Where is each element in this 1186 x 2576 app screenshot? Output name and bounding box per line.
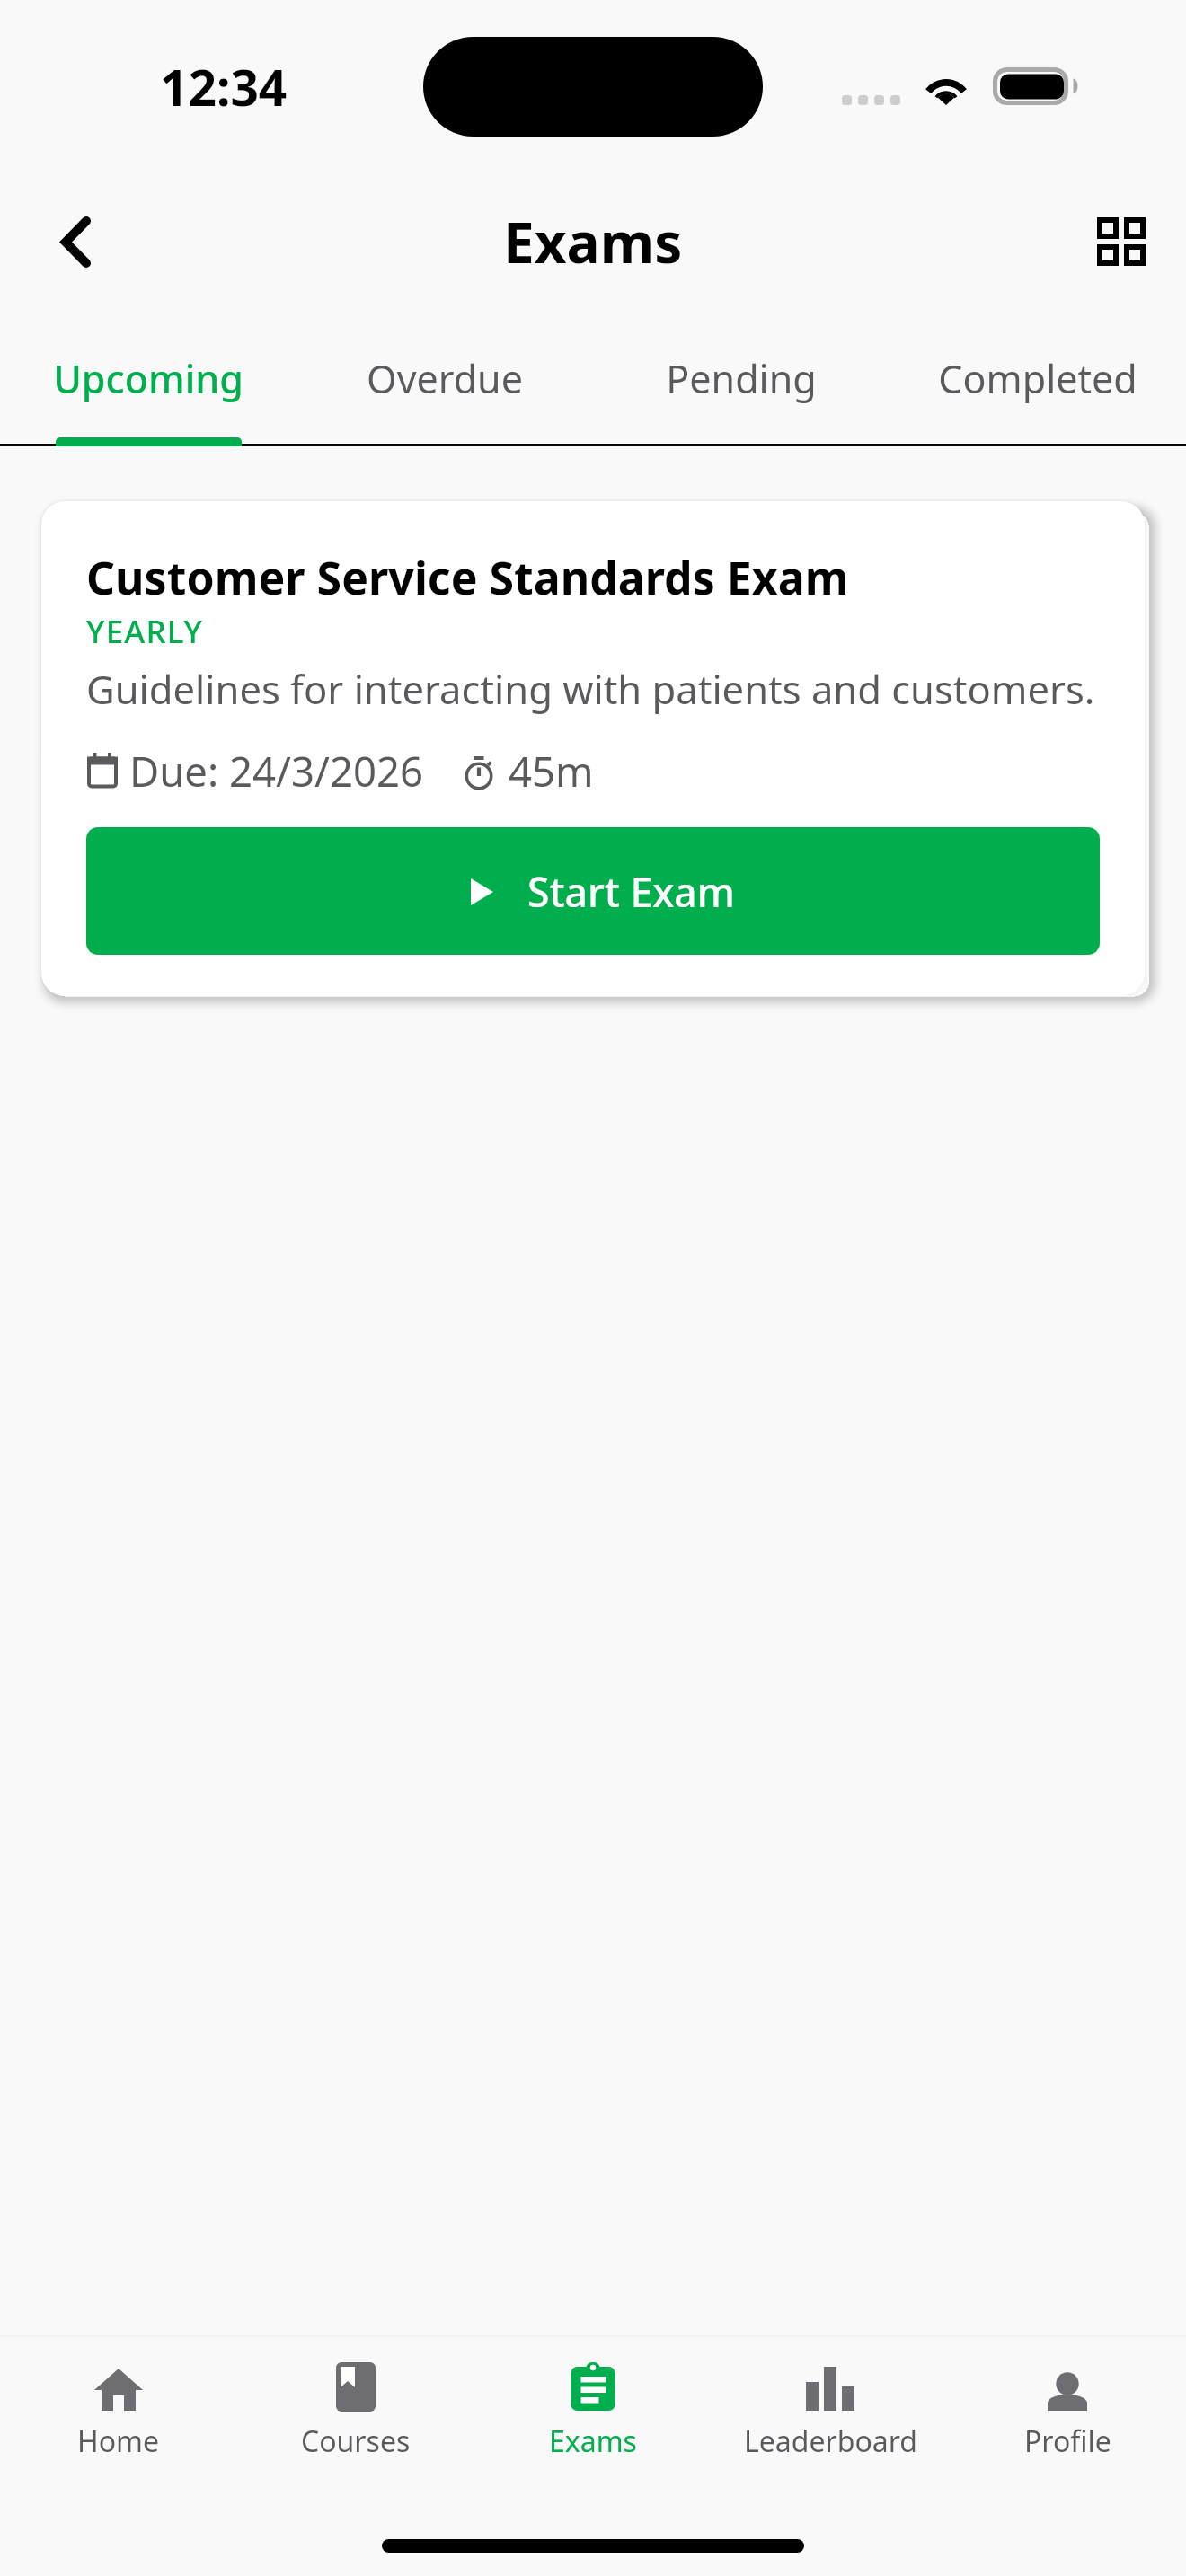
staticText: Overdue <box>367 352 523 405</box>
staticText: 12:34 <box>160 53 288 120</box>
staticText: Guidelines for interacting with patients… <box>86 662 1095 715</box>
staticText: Exams <box>503 204 683 279</box>
button[interactable]: Leaderboard <box>712 2337 949 2504</box>
staticText: Pending <box>666 352 817 405</box>
button[interactable]: Customer Service Standards Exam <box>41 501 1145 996</box>
staticText: Home <box>77 2422 160 2461</box>
staticText: Profile <box>1024 2422 1111 2461</box>
staticText: 45m <box>509 743 594 798</box>
button[interactable]: Overdue <box>296 313 593 444</box>
staticText: Customer Service Standards Exam <box>86 547 849 608</box>
staticText: Start Exam <box>527 864 735 919</box>
staticText: Completed <box>938 352 1137 405</box>
button[interactable]: Upcoming <box>0 313 296 444</box>
button[interactable]: Exams <box>474 2337 712 2504</box>
button[interactable]: Courses <box>237 2337 474 2504</box>
button[interactable]: Pending <box>593 313 889 444</box>
button[interactable]: Home <box>0 2337 237 2504</box>
staticText: Exams <box>549 2422 637 2461</box>
button[interactable]: Profile <box>949 2337 1186 2504</box>
button[interactable]: Completed <box>889 313 1186 444</box>
staticText: Courses <box>301 2422 411 2461</box>
staticText: YEARLY <box>86 610 204 653</box>
button[interactable]: Back <box>26 192 125 291</box>
staticText: Leaderboard <box>744 2422 917 2461</box>
button[interactable]: Grid view <box>1072 192 1171 291</box>
button[interactable]: Start Exam <box>86 827 1100 955</box>
staticText: Due: 24/3/2026 <box>129 743 424 798</box>
staticText: Upcoming <box>53 352 243 405</box>
